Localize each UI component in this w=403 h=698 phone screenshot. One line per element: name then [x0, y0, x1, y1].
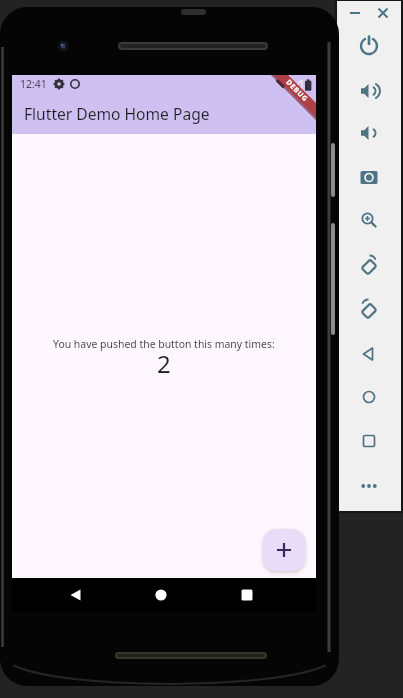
button[interactable]: [355, 163, 383, 191]
staticText: You have pushed the button this many tim…: [53, 337, 275, 351]
button[interactable]: [355, 340, 383, 368]
staticText: Flutter Demo Home Page: [24, 103, 210, 124]
button[interactable]: [233, 581, 261, 609]
button[interactable]: [355, 31, 383, 59]
button[interactable]: [341, 0, 369, 27]
staticText: 2: [157, 347, 171, 380]
button[interactable]: [147, 581, 175, 609]
button[interactable]: [355, 119, 383, 147]
button[interactable]: [355, 296, 383, 324]
staticText: DEBUG: [284, 78, 310, 104]
button[interactable]: [355, 383, 383, 411]
button[interactable]: [355, 252, 383, 280]
staticText: 12:41: [20, 77, 47, 91]
button[interactable]: [369, 0, 397, 27]
button[interactable]: [61, 581, 89, 609]
button[interactable]: [355, 472, 383, 500]
button[interactable]: [263, 529, 305, 571]
button[interactable]: [355, 427, 383, 455]
button[interactable]: [355, 77, 383, 105]
button[interactable]: [355, 206, 383, 234]
